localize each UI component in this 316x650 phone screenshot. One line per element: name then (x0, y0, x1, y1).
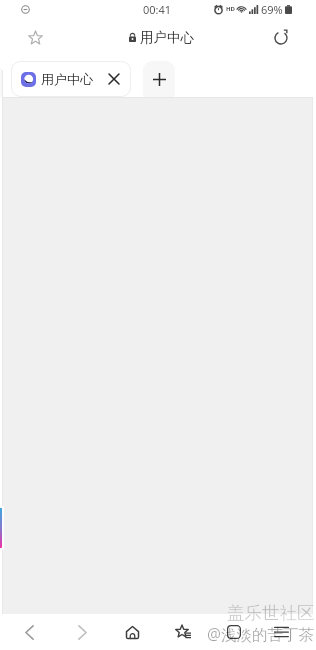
staticText: @浅淡的苦丁茶 (207, 623, 314, 644)
button[interactable]: 用户中心 (11, 61, 131, 97)
button[interactable]: 用户中心 (129, 23, 194, 52)
staticText: 用户中心 (41, 71, 93, 87)
button[interactable]: Bookmarks (165, 617, 201, 647)
staticText: 盖乐世社区 (227, 602, 315, 624)
button[interactable]: Menu (263, 617, 299, 647)
button[interactable]: Forward (64, 617, 100, 647)
button[interactable]: Home (114, 617, 150, 647)
button[interactable]: Refresh (266, 23, 295, 52)
button[interactable]: Back (11, 617, 47, 647)
button[interactable]: Tabs (216, 617, 252, 647)
staticText: 用户中心 (140, 29, 194, 46)
staticText: HD (226, 5, 235, 13)
button[interactable]: New tab (143, 61, 175, 97)
staticText: 00:41 (143, 2, 172, 17)
staticText: 69% (261, 2, 283, 17)
button[interactable]: Close tab (102, 64, 126, 94)
button[interactable]: Add bookmark (21, 23, 50, 52)
